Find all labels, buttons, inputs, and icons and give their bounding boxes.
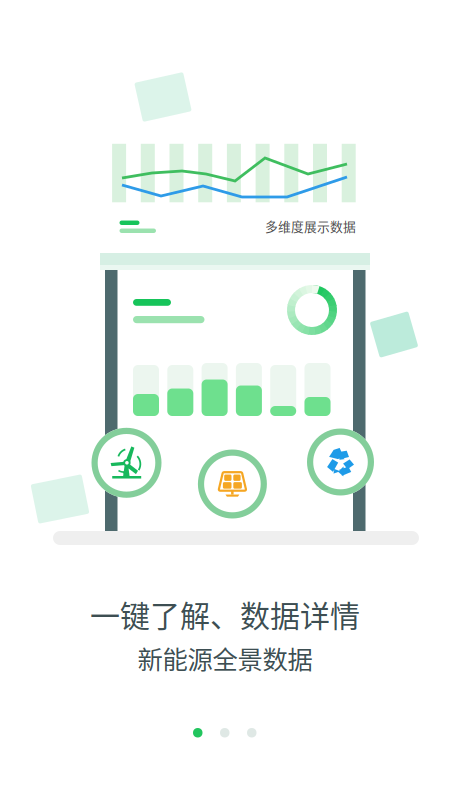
- staticText: 新能源全景数据: [137, 640, 312, 676]
- staticText: 一键了解、数据详情: [90, 592, 360, 636]
- staticText: 多维度展示数据: [265, 217, 356, 235]
